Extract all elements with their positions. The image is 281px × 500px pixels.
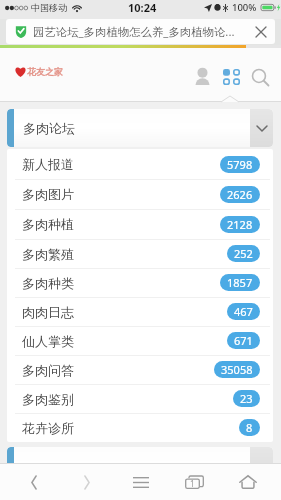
button[interactable]: 花卉诊所 [7,413,273,442]
button[interactable]: 多肉论坛 [7,109,273,147]
button[interactable]: Expand [250,447,273,485]
staticText: 671 [234,333,253,348]
button[interactable]: 多肉图片 [7,179,273,209]
staticText: 花友之家 [27,66,63,77]
staticText: 新人报道 [22,156,74,172]
staticText: 1857 [227,275,253,290]
staticText: 8 [246,420,253,435]
button[interactable]: Search [246,62,275,92]
button[interactable]: 新人报道 [7,149,273,179]
button[interactable]: Expand [7,447,273,485]
button[interactable]: 肉肉日志 [7,297,273,326]
button[interactable]: 多肉繁殖 [7,239,273,268]
staticText: 100% [232,1,257,14]
staticText: 5798 [227,157,253,172]
button[interactable]: Back [14,464,54,500]
button[interactable]: Categories [217,62,246,92]
button[interactable]: 园艺论坛_多肉植物怎么养_多肉植物论... [6,19,275,44]
button[interactable]: 多肉种类 [7,268,273,297]
button[interactable]: Forward [67,464,107,500]
staticText: 多肉鉴别 [22,391,74,407]
staticText: 467 [234,304,253,319]
button[interactable]: Home [228,464,268,500]
staticText: 多肉繁殖 [22,246,74,262]
staticText: 花卉诊所 [22,420,74,436]
staticText: 多肉问答 [22,362,74,378]
staticText: 多肉种植 [22,216,74,232]
button[interactable]: 仙人掌类 [7,326,273,355]
staticText: 园艺论坛_多肉植物怎么养_多肉植物论... [33,24,235,40]
staticText: 2626 [227,187,253,202]
staticText: 35058 [221,362,253,377]
staticText: 仙人掌类 [22,333,74,349]
staticText: 中国移动 [31,2,67,13]
staticText: 1 [190,478,195,489]
button[interactable]: 多肉种植 [7,209,273,239]
staticText: 肉肉日志 [22,304,74,320]
staticText: 2128 [227,217,253,232]
button[interactable]: Expand [250,109,273,147]
button[interactable]: 多肉鉴别 [7,384,273,413]
staticText: 多肉论坛 [23,120,75,136]
button[interactable]: Menu [121,464,161,500]
staticText: 23 [240,391,253,406]
button[interactable]: Account [188,62,217,92]
staticText: 多肉种类 [22,275,74,291]
staticText: 10:24 [128,0,157,15]
button[interactable]: Close tab [249,20,273,44]
staticText: 252 [234,246,253,261]
button[interactable]: 花友之家 [14,66,63,77]
button[interactable]: 多肉问答 [7,355,273,384]
staticText: 多肉图片 [22,186,74,202]
button[interactable]: Tabs [174,464,214,500]
